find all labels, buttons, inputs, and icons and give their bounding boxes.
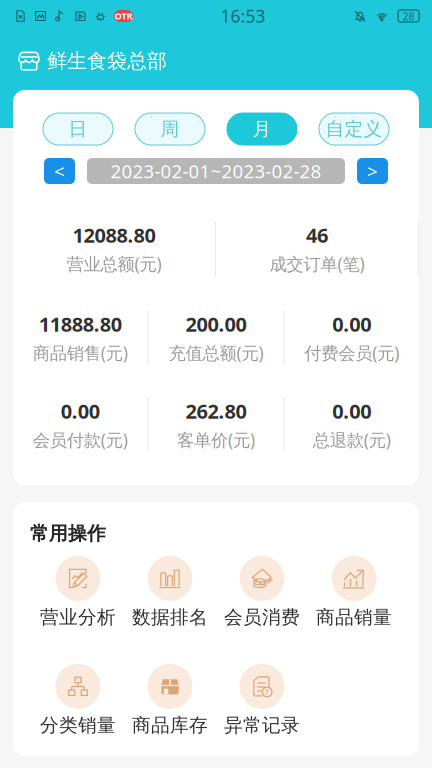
staticText: 常用操作 [30,522,106,545]
staticText: 营业分析 [40,606,116,629]
staticText: 数据排名 [132,606,208,629]
staticText: 成交订单(笔) [269,252,364,275]
staticText: 付费会员(元) [304,341,399,364]
staticText: 总退款(元) [313,428,391,451]
staticText: < [54,159,65,183]
staticText: 262.80 [185,398,246,424]
button[interactable]: 数据排名 [124,556,216,629]
staticText: 自定义 [325,117,382,140]
staticText: 16:53 [220,4,265,27]
staticText: 商品销售(元) [33,341,128,364]
button[interactable]: 商品销量 [308,556,400,629]
button[interactable]: 日 [43,113,113,145]
staticText: 28 [402,9,414,23]
staticText: 鲜生食袋总部 [47,49,167,73]
staticText: 12088.80 [72,222,155,248]
staticText: 会员付款(元) [33,428,128,451]
button[interactable]: > [357,158,388,184]
button[interactable]: 周 [135,113,205,145]
staticText: 客单价(元) [177,428,255,451]
staticText: OTR [114,10,132,22]
staticText: 46 [306,222,328,248]
staticText: 日 [68,117,87,140]
staticText: 0.00 [332,311,371,337]
staticText: 商品销量 [316,606,392,629]
button[interactable]: 月 [227,113,297,145]
staticText: 2023-02-01~2023-02-28 [110,159,321,183]
staticText: 周 [160,117,179,140]
staticText: 商品库存 [132,714,208,737]
button[interactable]: 自定义 [319,113,389,145]
staticText: 0.00 [332,398,371,424]
staticText: 营业总额(元) [66,252,161,275]
button[interactable]: 异常记录 [216,664,308,737]
button[interactable]: 营业分析 [32,556,124,629]
button[interactable]: < [44,158,75,184]
staticText: 会员消费 [224,606,300,629]
staticText: 200.00 [185,311,246,337]
button[interactable]: 商品库存 [124,664,216,737]
button[interactable]: 分类销量 [32,664,124,737]
staticText: 11888.80 [39,311,122,337]
staticText: > [367,159,378,183]
staticText: 充值总额(元) [168,341,263,364]
staticText: 月 [252,117,271,140]
button[interactable]: 会员消费 [216,556,308,629]
staticText: 0.00 [61,398,100,424]
staticText: 异常记录 [224,714,300,737]
staticText: 分类销量 [40,714,116,737]
